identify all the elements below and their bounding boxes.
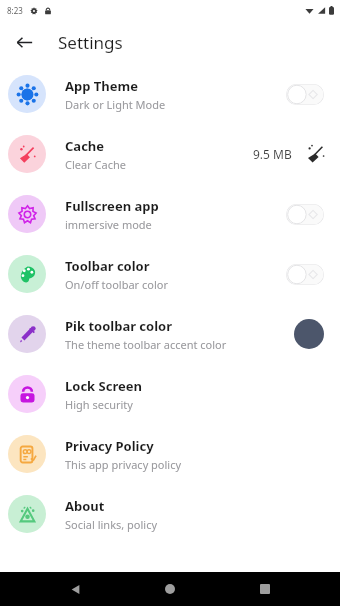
staticText: Settings bbox=[58, 31, 123, 54]
button[interactable]: Home bbox=[150, 572, 190, 606]
button[interactable]: Pik toolbar color bbox=[0, 304, 340, 364]
staticText: Toolbar color bbox=[65, 257, 150, 275]
staticText: App Theme bbox=[65, 77, 138, 95]
button[interactable]: Fullscreen app bbox=[0, 184, 340, 244]
staticText: Dark or Light Mode bbox=[65, 97, 166, 112]
staticText: Social links, policy bbox=[65, 517, 158, 532]
staticText: 8:23 bbox=[7, 5, 23, 16]
button[interactable]: Back bbox=[6, 24, 42, 60]
button[interactable]: Toggle bbox=[286, 204, 324, 225]
button[interactable]: Pick color bbox=[294, 319, 324, 349]
staticText: About bbox=[65, 497, 105, 515]
button[interactable]: App Theme bbox=[0, 64, 340, 124]
button[interactable]: Toggle bbox=[286, 84, 324, 105]
staticText: Privacy Policy bbox=[65, 437, 154, 455]
staticText: 9.5 MB bbox=[253, 146, 292, 162]
button[interactable]: Cache bbox=[0, 124, 340, 184]
staticText: This app privacy policy bbox=[65, 457, 182, 472]
button[interactable]: Back bbox=[55, 572, 95, 606]
staticText: High security bbox=[65, 397, 133, 412]
button[interactable]: Privacy Policy bbox=[0, 424, 340, 484]
button[interactable]: Lock Screen bbox=[0, 364, 340, 424]
staticText: On/off toolbar color bbox=[65, 277, 168, 292]
button[interactable]: Recents bbox=[245, 572, 285, 606]
staticText: Cache bbox=[65, 137, 105, 155]
staticText: Pik toolbar color bbox=[65, 317, 173, 335]
staticText: The theme toolbar accent color bbox=[65, 337, 227, 352]
staticText: Lock Screen bbox=[65, 377, 142, 395]
staticText: immersive mode bbox=[65, 217, 152, 232]
button[interactable]: About bbox=[0, 484, 340, 544]
button[interactable]: Toggle bbox=[286, 264, 324, 285]
staticText: Clear Cache bbox=[65, 157, 126, 172]
staticText: Fullscreen app bbox=[65, 197, 159, 215]
button[interactable]: Toolbar color bbox=[0, 244, 340, 304]
